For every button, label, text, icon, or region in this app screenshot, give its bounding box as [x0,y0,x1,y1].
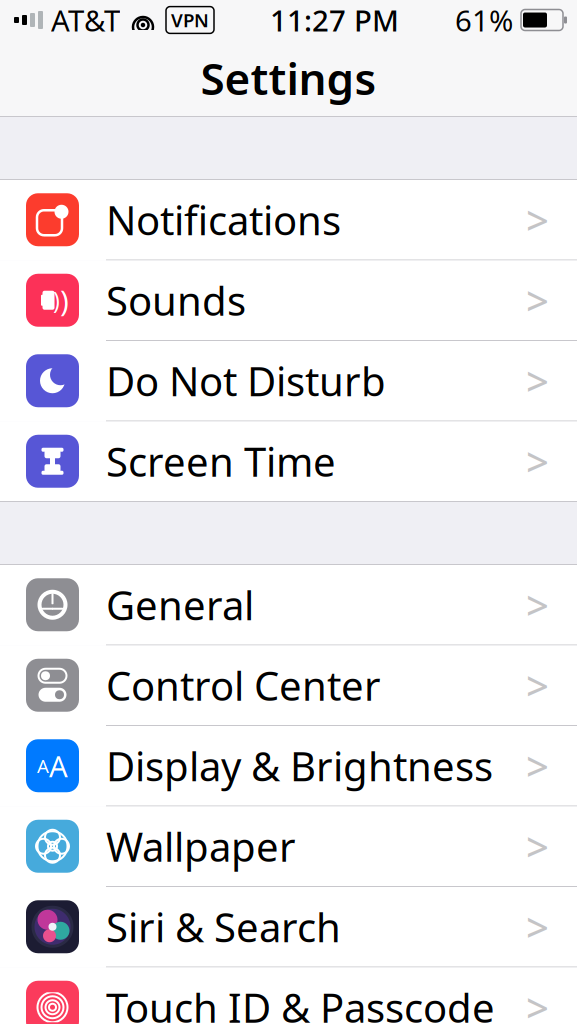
staticText: ) [53,285,60,315]
staticText: A [37,753,49,778]
button[interactable]: Screen Time [0,421,577,501]
staticText: 61% [455,0,513,39]
staticText: > [526,981,549,1024]
button[interactable]: Notifications [0,180,577,260]
staticText: Display & Brightness [106,739,493,792]
button[interactable]: Siri & Search [0,887,577,967]
staticText: 11:27 PM [270,0,399,39]
staticText: > [526,820,549,873]
staticText: Touch ID & Passcode [106,981,495,1024]
button[interactable]: Do Not Disturb [0,341,577,421]
staticText: Notifications [106,193,341,246]
button[interactable]: ) [0,260,577,341]
staticText: > [526,354,549,407]
staticText: > [526,739,549,792]
button[interactable]: A [0,726,577,806]
staticText: Control Center [106,659,381,712]
staticText: Sounds [106,274,246,327]
staticText: Siri & Search [106,900,341,953]
staticText: AT&T [51,0,120,39]
button[interactable]: Touch ID & Passcode [0,967,577,1024]
button[interactable]: General [0,565,577,645]
staticText: General [106,578,254,631]
staticText: Screen Time [106,435,336,488]
staticText: Do Not Disturb [106,354,386,407]
staticText: Wallpaper [106,820,296,873]
button[interactable]: Wallpaper [0,806,577,887]
staticText: VPN [171,8,209,32]
staticText: A [49,746,68,785]
staticText: > [526,435,549,488]
staticText: Settings [200,49,376,107]
button[interactable]: Control Center [0,645,577,726]
staticText: > [526,274,549,327]
staticText: ) [60,281,69,320]
staticText: > [526,193,549,246]
staticText: > [526,578,549,631]
staticText: > [526,659,549,712]
staticText: > [526,900,549,953]
